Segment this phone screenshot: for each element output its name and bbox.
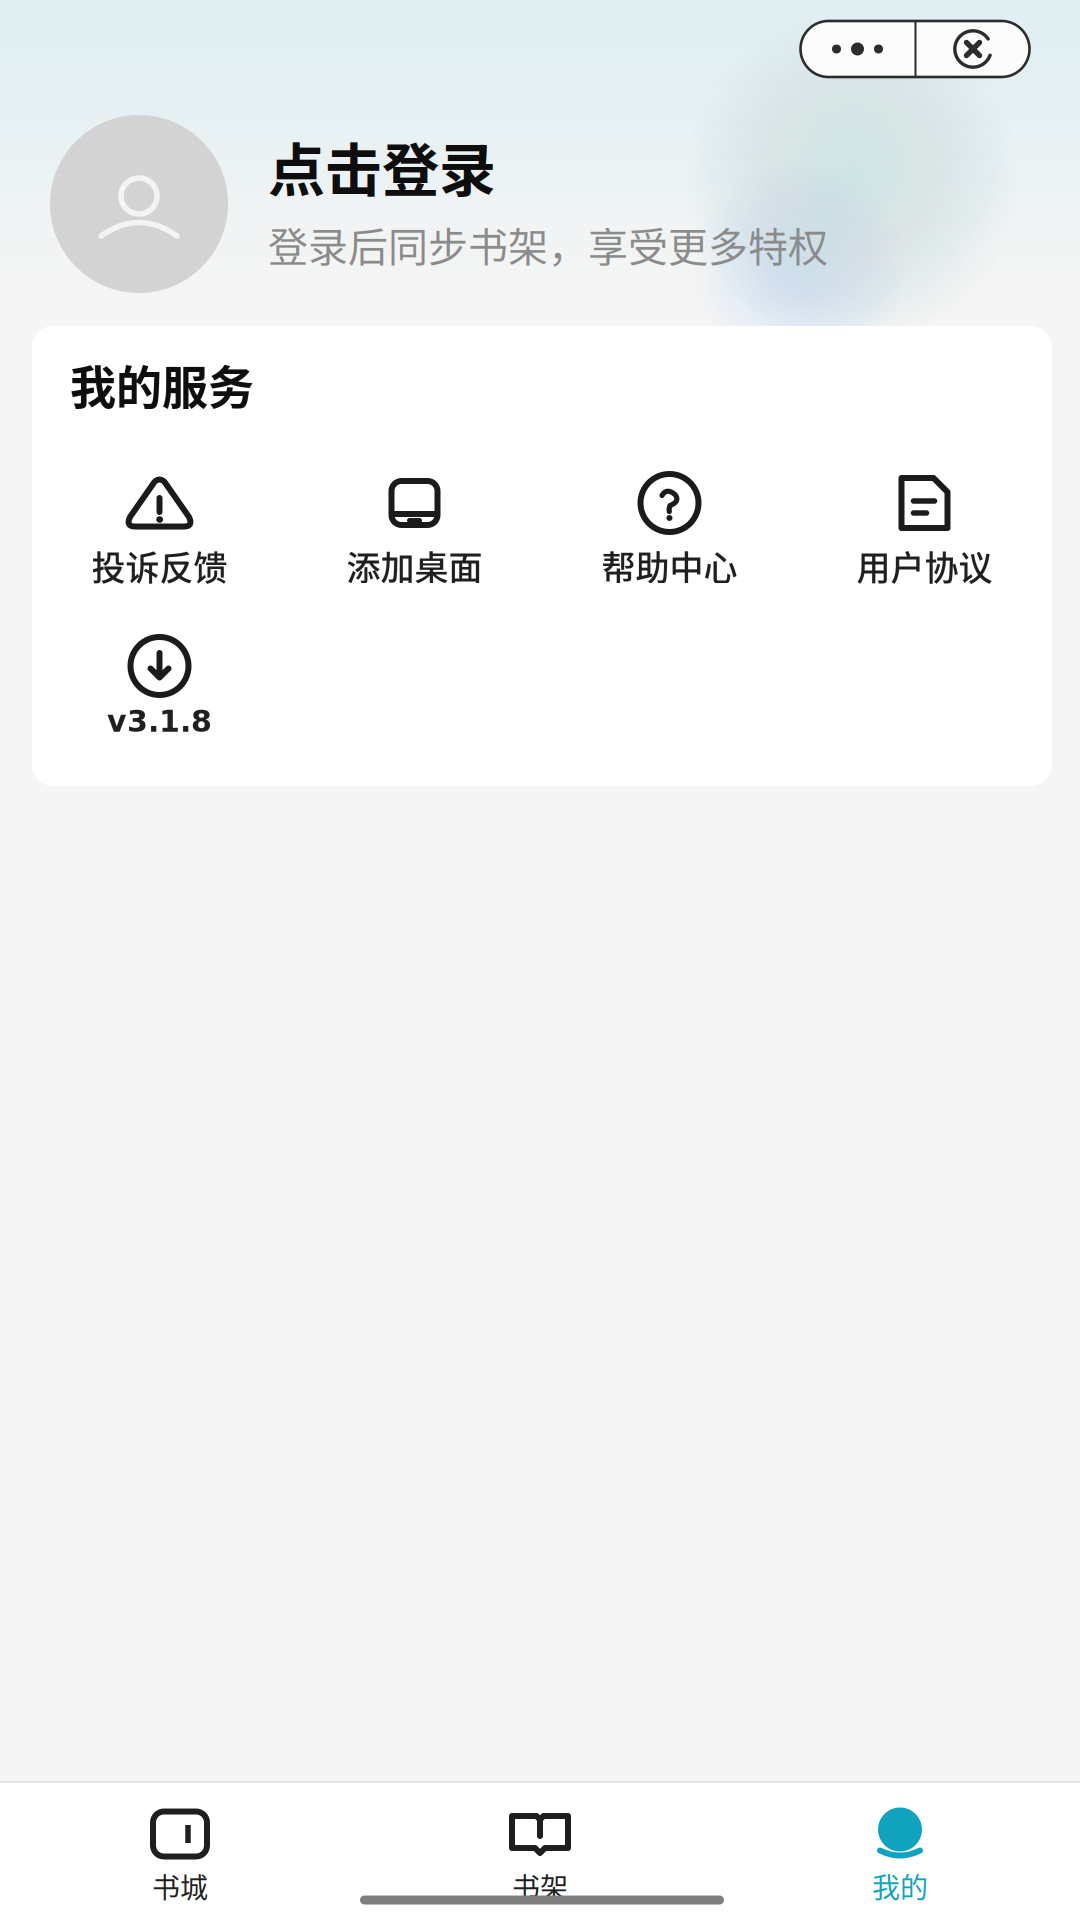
button[interactable]: 添加桌面 — [287, 465, 542, 605]
staticText: 我的 — [872, 1866, 928, 1906]
button[interactable]: v3.1.8 — [32, 628, 287, 768]
staticText: 点击登录 — [268, 125, 496, 207]
staticText: 我的服务 — [70, 351, 254, 417]
button[interactable]: More — [800, 21, 914, 77]
staticText: 帮助中心 — [601, 541, 737, 590]
staticText: 添加桌面 — [346, 541, 482, 590]
button[interactable]: 用户协议 — [797, 465, 1052, 605]
staticText: 书城 — [152, 1866, 208, 1906]
button[interactable]: Close — [916, 21, 1029, 77]
staticText: v3.1.8 — [107, 704, 212, 739]
staticText: 用户协议 — [856, 541, 992, 590]
button[interactable]: 帮助中心 — [542, 465, 797, 605]
staticText: 投诉反馈 — [91, 541, 227, 590]
button[interactable]: 点击登录 — [50, 115, 1050, 293]
staticText: 书架 — [512, 1866, 568, 1906]
button[interactable]: 书城 — [0, 1781, 360, 1920]
button[interactable]: 投诉反馈 — [32, 465, 287, 605]
button[interactable]: 我的 — [720, 1781, 1080, 1920]
button[interactable]: 书架 — [360, 1781, 720, 1920]
staticText: 登录后同步书架，享受更多特权 — [268, 215, 828, 273]
